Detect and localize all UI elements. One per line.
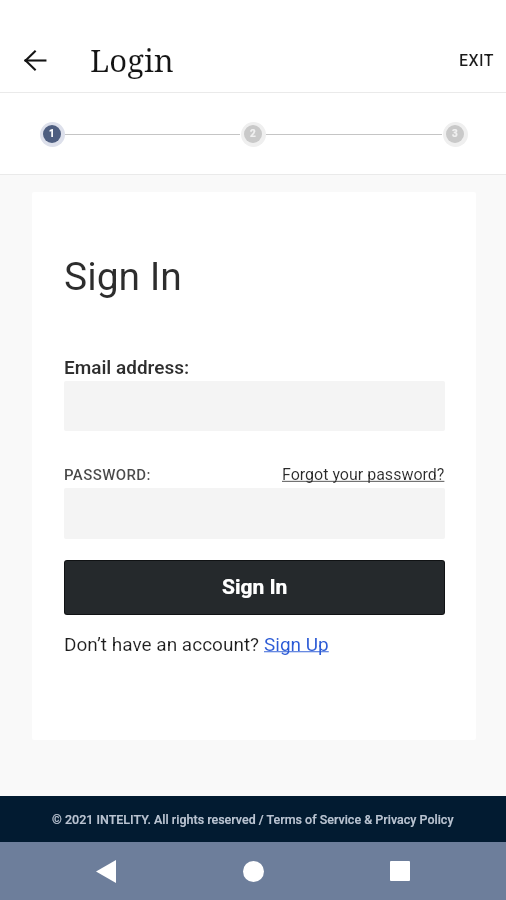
staticText: 2 [250, 128, 256, 140]
button[interactable]: Forgot your password? [282, 465, 445, 484]
staticText: Login [90, 39, 174, 81]
button[interactable]: Step 1 [39, 121, 65, 147]
staticText: Email address: [64, 356, 190, 378]
button[interactable]: EXIT [447, 37, 506, 84]
staticText: Sign Up [264, 633, 329, 655]
button[interactable]: Back [82, 847, 130, 895]
button[interactable]: Sign In [65, 561, 444, 614]
button[interactable]: Step 3 [442, 121, 468, 147]
staticText: © 2021 INTELITY. All rights reserved / T… [52, 812, 454, 827]
button[interactable]: Step 2 [240, 121, 266, 147]
button[interactable]: Sign Up [264, 633, 329, 655]
button[interactable]: Home [229, 847, 277, 895]
staticText: Sign In [64, 254, 182, 300]
staticText: Forgot your password? [282, 465, 445, 484]
button[interactable]: Recent apps [376, 847, 424, 895]
staticText: Don’t have an account? [64, 633, 264, 655]
staticText: 1 [49, 128, 55, 140]
staticText: 3 [452, 128, 458, 140]
button[interactable]: Back [11, 36, 59, 84]
staticText: Sign In [222, 575, 288, 600]
staticText: EXIT [459, 51, 494, 70]
staticText: PASSWORD: [64, 466, 151, 484]
